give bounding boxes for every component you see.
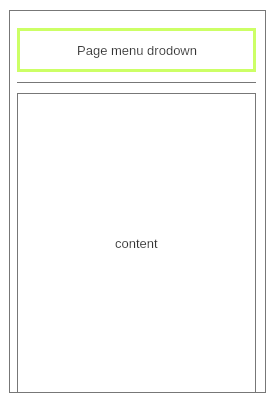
button[interactable]: Page menu dropdown xyxy=(17,28,256,72)
staticText: Page menu drodown xyxy=(77,43,197,58)
staticText: content xyxy=(115,236,158,251)
